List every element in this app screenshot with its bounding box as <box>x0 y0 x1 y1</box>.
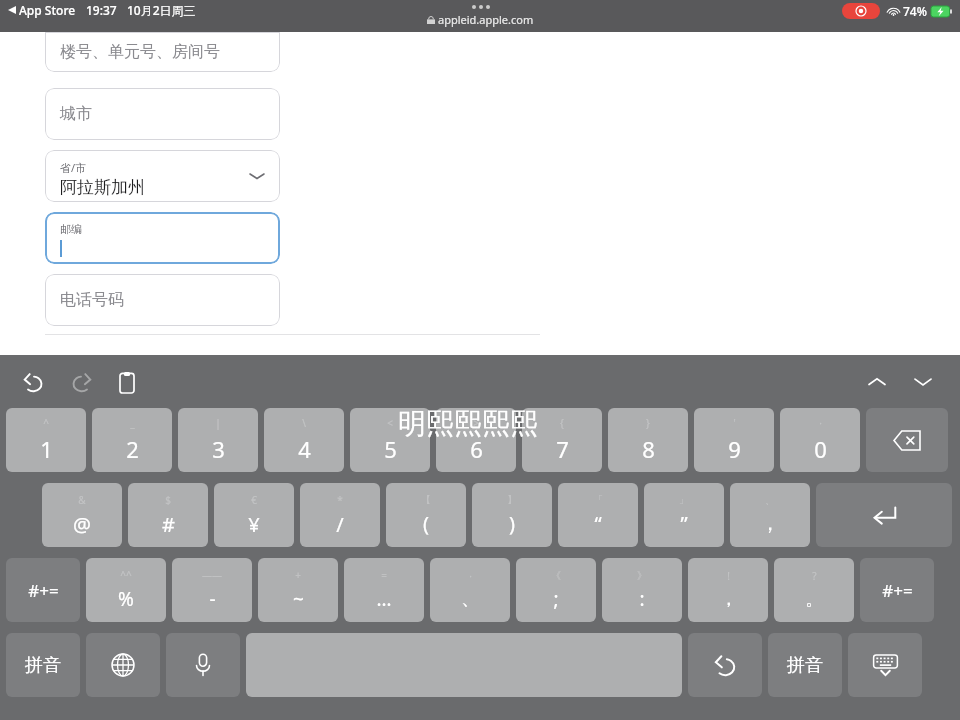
staticText: & <box>78 493 86 507</box>
button[interactable]: Redo <box>64 365 98 399</box>
button[interactable]: Recording <box>842 3 880 19</box>
button[interactable]: Backspace <box>866 408 948 472</box>
button[interactable]: Dictation <box>166 633 240 697</box>
staticText: @ <box>73 511 91 538</box>
staticText: < <box>387 416 393 430</box>
staticText: ? <box>812 569 817 583</box>
staticText: 6 <box>470 434 483 464</box>
button[interactable]: 拼音 <box>768 633 842 697</box>
button[interactable]: ; <box>516 558 596 622</box>
staticText: 【 <box>421 493 431 506</box>
button[interactable]: ~ <box>258 558 338 622</box>
button[interactable]: ， <box>730 483 810 547</box>
button[interactable]: Switch keyboard <box>86 633 160 697</box>
staticText: : <box>639 586 645 612</box>
staticText: 2 <box>126 434 139 464</box>
staticText: 电话号码 <box>60 290 124 310</box>
staticText: * <box>337 493 343 507</box>
button[interactable]: 。 <box>774 558 854 622</box>
staticText: 8 <box>642 434 655 464</box>
button[interactable]: ¥ <box>214 483 294 547</box>
staticText: 》 <box>637 569 647 582</box>
button[interactable]: 3 <box>178 408 258 472</box>
button[interactable]: # <box>128 483 208 547</box>
staticText: 拼音 <box>787 654 823 677</box>
button[interactable]: 7 <box>522 408 602 472</box>
button[interactable]: % <box>86 558 166 622</box>
button[interactable]: - <box>172 558 252 622</box>
staticText: 7 <box>556 434 569 464</box>
button[interactable]: 2 <box>92 408 172 472</box>
button[interactable]: ( <box>386 483 466 547</box>
button[interactable]: #+= <box>860 558 934 622</box>
button[interactable]: ” <box>644 483 724 547</box>
staticText: 1 <box>40 434 53 464</box>
button[interactable]: 城市 <box>45 88 280 140</box>
staticText: > <box>473 416 479 430</box>
staticText: 邮编 <box>60 222 82 236</box>
staticText: 4 <box>298 434 311 464</box>
button[interactable]: 6 <box>436 408 516 472</box>
button[interactable]: 0 <box>780 408 860 472</box>
button[interactable]: / <box>300 483 380 547</box>
button[interactable]: “ <box>558 483 638 547</box>
button[interactable]: ， <box>688 558 768 622</box>
staticText: 3 <box>212 434 225 464</box>
staticText: … <box>376 586 392 612</box>
button[interactable]: 8 <box>608 408 688 472</box>
button[interactable]: ) <box>472 483 552 547</box>
staticText: 9 <box>728 434 741 464</box>
staticText: } <box>646 416 650 430</box>
staticText: · <box>469 569 472 583</box>
staticText: 10月2日周三 <box>127 2 196 18</box>
button[interactable]: Return <box>816 483 952 547</box>
staticText: ! <box>727 569 730 583</box>
staticText: ¥ <box>248 511 260 538</box>
staticText: #+= <box>882 579 913 602</box>
button[interactable]: 拼音 <box>6 633 80 697</box>
staticText: 阿拉斯加州 <box>60 177 145 198</box>
button[interactable]: 9 <box>694 408 774 472</box>
staticText: \ <box>302 416 306 430</box>
staticText: 《 <box>551 569 561 582</box>
button[interactable]: 、 <box>430 558 510 622</box>
button[interactable]: 4 <box>264 408 344 472</box>
staticText: ^^ <box>120 568 132 582</box>
staticText: # <box>162 511 175 538</box>
button[interactable]: Next field <box>906 365 940 399</box>
staticText: App Store <box>19 2 76 18</box>
staticText: “ <box>594 510 602 537</box>
button[interactable]: Paste <box>110 365 144 399</box>
staticText: ; <box>553 586 559 612</box>
staticText: / <box>336 511 344 538</box>
staticText: ( <box>423 510 429 537</box>
button[interactable]: … <box>344 558 424 622</box>
button[interactable]: @ <box>42 483 122 547</box>
staticText: appleid.apple.com <box>438 12 534 27</box>
button[interactable]: 邮编 <box>45 212 280 264</box>
button[interactable]: Undo <box>16 365 50 399</box>
button[interactable]: #+= <box>6 558 80 622</box>
staticText: 明熙熙熙熙 <box>398 406 538 441</box>
button[interactable]: Undo typing <box>688 633 762 697</box>
button[interactable]: 楼号、单元号、房间号 <box>45 32 280 72</box>
staticText: ' <box>733 416 736 430</box>
staticText: 0 <box>814 434 827 464</box>
button[interactable]: 电话号码 <box>45 274 280 326</box>
button[interactable]: Previous field <box>860 365 894 399</box>
button[interactable]: 1 <box>6 408 86 472</box>
staticText: 74% <box>903 3 927 19</box>
button[interactable]: 省/市 <box>45 150 280 202</box>
staticText: 楼号、单元号、房间号 <box>60 42 220 62</box>
staticText: | <box>215 416 221 430</box>
button[interactable]: : <box>602 558 682 622</box>
staticText: ~ <box>293 586 304 612</box>
staticText: 省/市 <box>60 160 87 175</box>
staticText: #+= <box>28 579 59 602</box>
staticText: 。 <box>805 587 824 611</box>
button[interactable]: Hide keyboard <box>848 633 922 697</box>
button[interactable]: 5 <box>350 408 430 472</box>
staticText: _ <box>130 416 135 430</box>
